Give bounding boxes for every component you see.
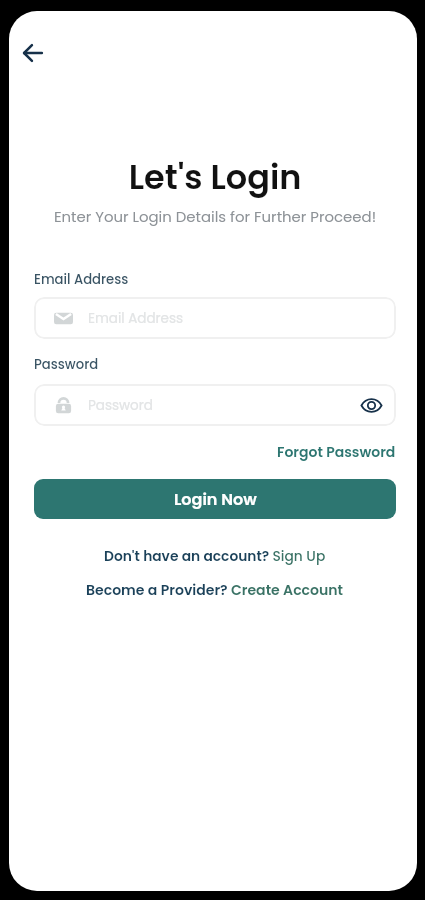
button[interactable]: Login Now [34, 479, 396, 519]
staticText: Password [34, 355, 99, 373]
staticText: Login Now [174, 488, 257, 510]
staticText: Email Address [34, 270, 129, 288]
staticText: Don't have an account? Sign Up [104, 547, 326, 566]
staticText: Become a Provider? Create Account [86, 580, 344, 600]
button[interactable]: Email Address [34, 297, 396, 339]
staticText: Let's Login [34, 154, 396, 201]
staticText: Forgot Password [277, 442, 396, 462]
staticText: Password [88, 396, 153, 415]
button[interactable]: Show password [359, 393, 383, 417]
button[interactable]: Forgot Password [277, 442, 396, 462]
button[interactable]: Don't have an account? Sign Up [104, 547, 326, 566]
button[interactable]: Back [11, 31, 55, 75]
button[interactable]: Password [34, 384, 396, 426]
staticText: Email Address [88, 309, 184, 328]
staticText: Enter Your Login Details for Further Pro… [34, 206, 396, 227]
button[interactable]: Become a Provider? Create Account [86, 580, 344, 600]
